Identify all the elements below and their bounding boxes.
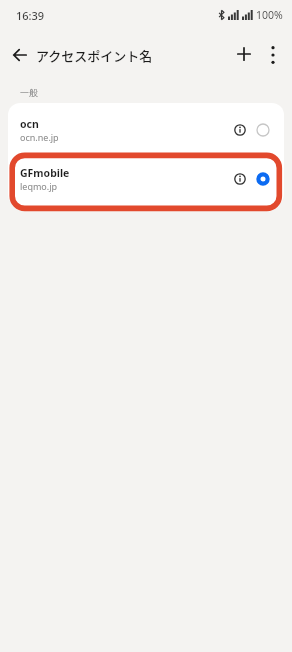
button[interactable]: ocn [8,104,284,156]
button[interactable] [6,41,33,68]
button[interactable] [228,167,252,191]
staticText: ocn [20,117,39,131]
button[interactable] [231,41,257,67]
button[interactable] [228,118,252,142]
staticText: 100% [256,8,283,22]
staticText: GFmobile [20,166,70,180]
button[interactable] [255,122,271,138]
staticText: アクセスポイント名 [36,46,153,65]
staticText: 一般 [20,87,38,98]
button[interactable] [261,41,285,68]
button[interactable] [255,171,271,187]
staticText: leqmo.jp [20,180,58,192]
button[interactable]: GFmobile [8,153,284,204]
staticText: ocn.ne.jp [20,131,59,143]
staticText: 16:39 [16,8,45,23]
